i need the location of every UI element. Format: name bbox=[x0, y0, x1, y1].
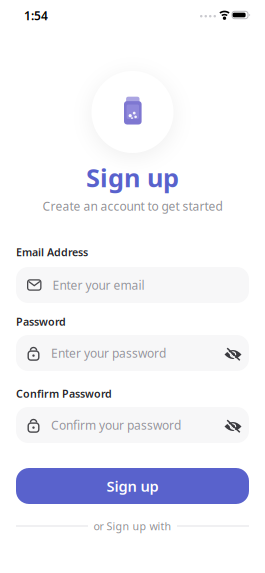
staticText: or Sign up with bbox=[93, 519, 171, 533]
staticText: Create an account to get started bbox=[42, 198, 222, 214]
button[interactable]: Show password bbox=[221, 414, 245, 436]
button[interactable]: Show password bbox=[221, 342, 245, 364]
staticText: Sign up bbox=[86, 161, 179, 194]
staticText: 1:54 bbox=[24, 7, 48, 23]
button[interactable]: Sign up bbox=[16, 468, 249, 504]
staticText: Enter your email bbox=[52, 277, 144, 293]
staticText: Sign up bbox=[106, 476, 158, 496]
staticText: Confirm Password bbox=[16, 386, 112, 401]
staticText: Email Address bbox=[16, 245, 88, 259]
staticText: Confirm your password bbox=[51, 417, 181, 433]
staticText: Password bbox=[16, 314, 66, 329]
staticText: Enter your password bbox=[51, 345, 166, 361]
